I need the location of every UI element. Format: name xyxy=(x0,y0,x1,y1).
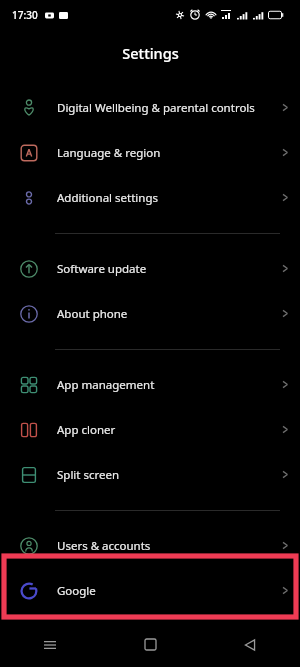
staticText: Users & accounts xyxy=(57,538,271,554)
staticText: Additional settings xyxy=(57,190,271,206)
staticText: Settings xyxy=(122,43,179,63)
staticText: 17:30 xyxy=(12,8,38,22)
button[interactable]: Users & accounts xyxy=(0,523,300,568)
button[interactable]: About phone xyxy=(0,291,300,336)
button[interactable]: App cloner xyxy=(0,407,300,452)
button[interactable]: App management xyxy=(0,362,300,407)
button[interactable]: Software update xyxy=(0,246,300,291)
button[interactable]: Additional settings xyxy=(0,175,300,220)
button[interactable]: Split screen xyxy=(0,452,300,497)
staticText: Split screen xyxy=(57,467,271,483)
staticText: App management xyxy=(57,377,271,393)
staticText: Google xyxy=(57,583,271,599)
button[interactable]: Language & region xyxy=(0,130,300,175)
staticText: About phone xyxy=(57,306,271,322)
staticText: Language & region xyxy=(57,145,271,161)
button[interactable]: Recent apps xyxy=(0,622,100,667)
button[interactable]: Digital Wellbeing & parental controls xyxy=(0,85,300,130)
staticText: Software update xyxy=(57,261,271,277)
staticText: App cloner xyxy=(57,422,271,438)
button[interactable]: Home xyxy=(100,622,200,667)
button[interactable]: Google xyxy=(0,568,300,613)
button[interactable]: Back xyxy=(200,622,300,667)
staticText: Digital Wellbeing & parental controls xyxy=(57,100,271,116)
